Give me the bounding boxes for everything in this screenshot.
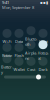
staticText: 9:41: [2, 0, 9, 5]
staticText: Bluetooth: [25, 36, 37, 47]
button[interactable]: Dark: [37, 58, 49, 71]
staticText: Rotate: [2, 53, 12, 58]
button[interactable]: Hotspot: [37, 44, 49, 57]
staticText: Flash: [14, 53, 23, 58]
button[interactable]: Wi-Fi: [1, 30, 13, 43]
staticText: Mon, September 8: [2, 5, 34, 10]
staticText: Battery: [1, 64, 13, 75]
staticText: Dark: [38, 67, 47, 72]
staticText: Cast: [27, 67, 35, 72]
button[interactable]: Airplane: [25, 44, 37, 57]
button[interactable]: Rotate: [1, 44, 13, 57]
staticText: Data: [15, 39, 23, 44]
staticText: Silent: [38, 39, 47, 44]
staticText: Hotspot: [37, 50, 48, 61]
button[interactable]: Data: [13, 30, 25, 43]
button[interactable]: Flash: [13, 44, 25, 57]
button[interactable]: Silent: [37, 30, 49, 43]
staticText: Airplane: [25, 50, 37, 61]
button[interactable]: Cast: [25, 58, 37, 71]
staticText: Wi-Fi: [2, 39, 11, 44]
button[interactable]: Battery: [1, 58, 13, 71]
staticText: Wallet: [13, 67, 24, 72]
button[interactable]: Bluetooth: [25, 30, 37, 43]
staticText: ▪▪▮: [40, 0, 48, 5]
button[interactable]: Wallet: [13, 58, 25, 71]
